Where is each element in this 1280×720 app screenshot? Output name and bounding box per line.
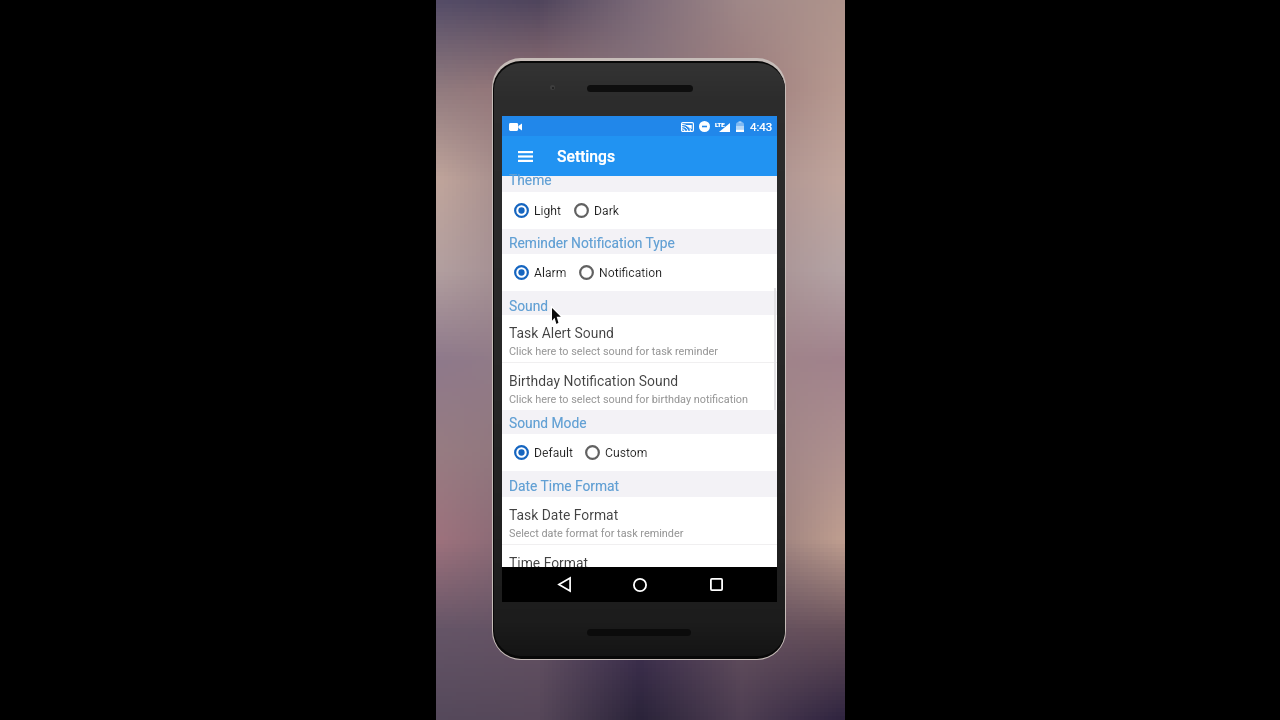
button[interactable]: Custom [585, 445, 648, 460]
staticText: Alarm [534, 266, 567, 280]
button[interactable]: Recent apps [700, 568, 733, 601]
staticText: Click here to select sound for task remi… [509, 345, 718, 358]
staticText: Select time format [509, 575, 599, 588]
button[interactable]: Home [623, 568, 656, 601]
button[interactable]: Notification [579, 265, 662, 280]
staticText: Notification [599, 266, 662, 280]
button[interactable]: Back [548, 568, 581, 601]
button[interactable]: Time Format [502, 545, 777, 592]
staticText: Sound [509, 298, 549, 314]
button[interactable]: Alarm [514, 265, 567, 280]
staticText: Sound Mode [509, 415, 587, 431]
button[interactable]: Default [514, 445, 573, 460]
staticText: Click here to select sound for birthday … [509, 393, 749, 406]
staticText: Settings [557, 147, 616, 165]
staticText: Default [534, 446, 573, 460]
staticText: Task Alert Sound [509, 325, 614, 341]
button[interactable]: Light [514, 203, 562, 218]
button[interactable]: Task Alert Sound [502, 315, 777, 362]
staticText: Task Date Format [509, 507, 619, 523]
button[interactable]: Birthday Notification Sound [502, 363, 777, 410]
staticText: Date Time Format [509, 478, 620, 494]
button[interactable]: Dark [574, 203, 619, 218]
staticText: Theme [509, 172, 552, 188]
staticText: 4:43 [750, 120, 773, 133]
button[interactable]: Task Date Format [502, 497, 777, 544]
staticText: Birthday Notification Sound [509, 373, 679, 389]
staticText: Custom [605, 446, 648, 460]
staticText: Select date format for task reminder [509, 527, 684, 540]
staticText: Dark [594, 204, 619, 218]
staticText: Reminder Notification Type [509, 235, 675, 251]
button[interactable]: Open navigation drawer [510, 141, 540, 171]
staticText: LTE [715, 121, 725, 128]
staticText: Light [534, 204, 562, 218]
staticText: Time Format [509, 555, 589, 571]
